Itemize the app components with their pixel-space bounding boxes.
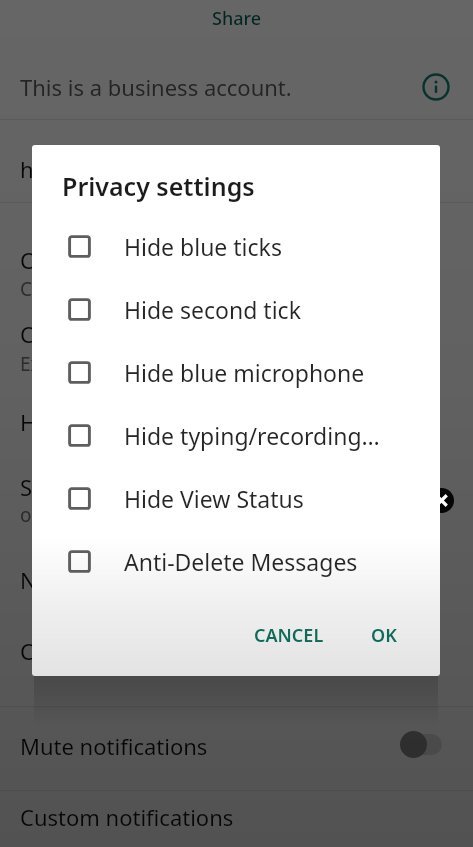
button[interactable]: Anti-Delete Messages bbox=[32, 530, 440, 593]
staticText: Chat history bbox=[20, 245, 145, 275]
button[interactable]: Hide typing/recording… bbox=[32, 404, 440, 467]
button[interactable]: Hide second tick bbox=[32, 278, 440, 341]
staticText: Notification settings bbox=[20, 565, 229, 595]
staticText: This is a business account. bbox=[20, 72, 292, 102]
button[interactable]: Hide blue ticks bbox=[32, 215, 440, 278]
staticText: on this chat bbox=[20, 502, 125, 528]
staticText: CANCEL bbox=[254, 623, 324, 648]
button[interactable]: CANCEL bbox=[244, 614, 334, 657]
staticText: Security bbox=[20, 472, 103, 502]
staticText: Hide typing/recording… bbox=[124, 420, 380, 451]
staticText: Custom notifications bbox=[20, 802, 234, 832]
other: Info bbox=[422, 73, 450, 101]
button[interactable]: Mute notifications toggle bbox=[394, 726, 448, 763]
staticText: Mute notifications bbox=[20, 731, 208, 761]
button[interactable]: Hide blue microphone bbox=[32, 341, 440, 404]
staticText: Custom wallpaper bbox=[20, 636, 208, 666]
staticText: Hide View Status bbox=[124, 483, 304, 514]
staticText: Anti-Delete Messages bbox=[124, 546, 358, 577]
button[interactable]: Hide View Status bbox=[32, 467, 440, 530]
staticText: Export chat bbox=[20, 351, 122, 377]
staticText: Privacy settings bbox=[62, 169, 255, 203]
button[interactable]: Share bbox=[0, 0, 473, 38]
staticText: Share bbox=[212, 6, 262, 31]
staticText: Hide blue microphone bbox=[124, 357, 365, 388]
staticText: Hide blue ticks bbox=[124, 231, 282, 262]
staticText: Chat history bbox=[20, 319, 145, 349]
staticText: OK bbox=[371, 623, 397, 648]
button[interactable]: OK bbox=[361, 614, 407, 657]
staticText: Clear chat bbox=[20, 276, 110, 302]
button[interactable]: This is a business account. bbox=[0, 58, 473, 116]
staticText: Hide second tick bbox=[124, 294, 301, 325]
staticText: hey there! I am using WhatsApp. bbox=[20, 154, 356, 184]
staticText: Hide media bbox=[20, 407, 139, 437]
